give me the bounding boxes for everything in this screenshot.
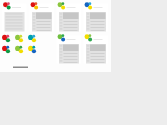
button[interactable] xyxy=(0,0,111,72)
